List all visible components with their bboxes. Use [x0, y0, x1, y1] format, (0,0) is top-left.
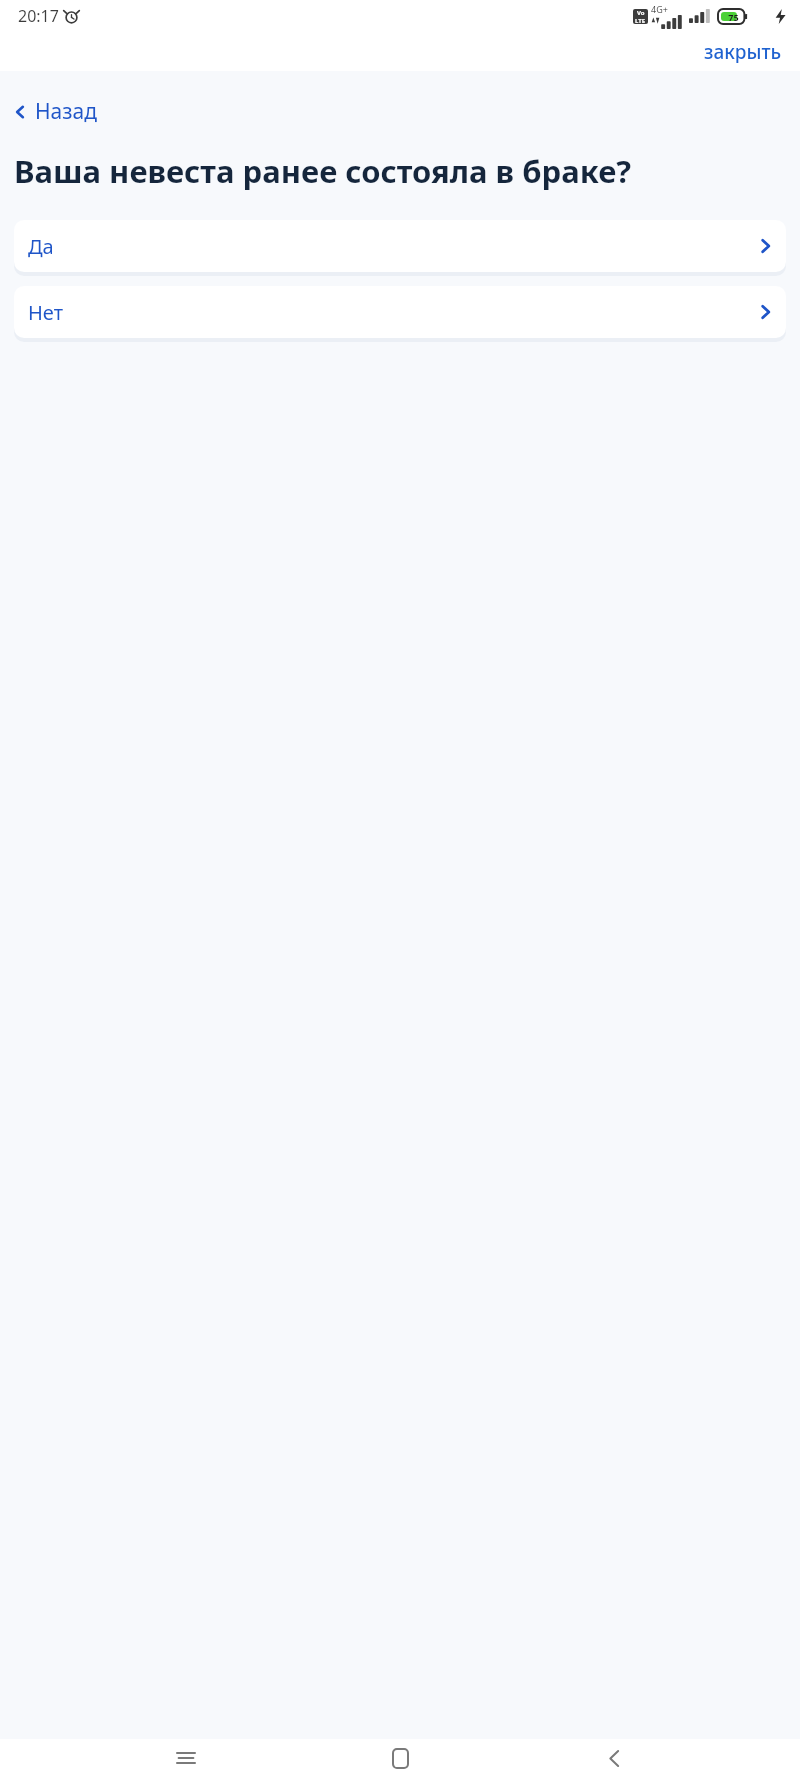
staticText: 20:17 — [18, 5, 59, 27]
staticText: Нет — [28, 299, 63, 326]
staticText: LTE — [635, 17, 646, 24]
staticText: Ваша невеста ранее состояла в браке? — [14, 150, 766, 192]
button[interactable]: Нет — [14, 286, 786, 338]
button[interactable]: Home — [372, 1739, 428, 1777]
staticText: 75 — [728, 11, 739, 23]
staticText: закрыть — [704, 39, 782, 63]
button[interactable]: закрыть — [686, 31, 800, 71]
staticText: Да — [28, 233, 54, 260]
button[interactable]: Back — [586, 1739, 642, 1777]
staticText: Vo — [637, 9, 645, 17]
button[interactable]: Recent apps — [158, 1739, 214, 1777]
staticText: 4G+ — [651, 3, 668, 15]
button[interactable]: Назад — [0, 91, 113, 132]
button[interactable]: Да — [14, 220, 786, 272]
staticText: Назад — [35, 97, 97, 126]
